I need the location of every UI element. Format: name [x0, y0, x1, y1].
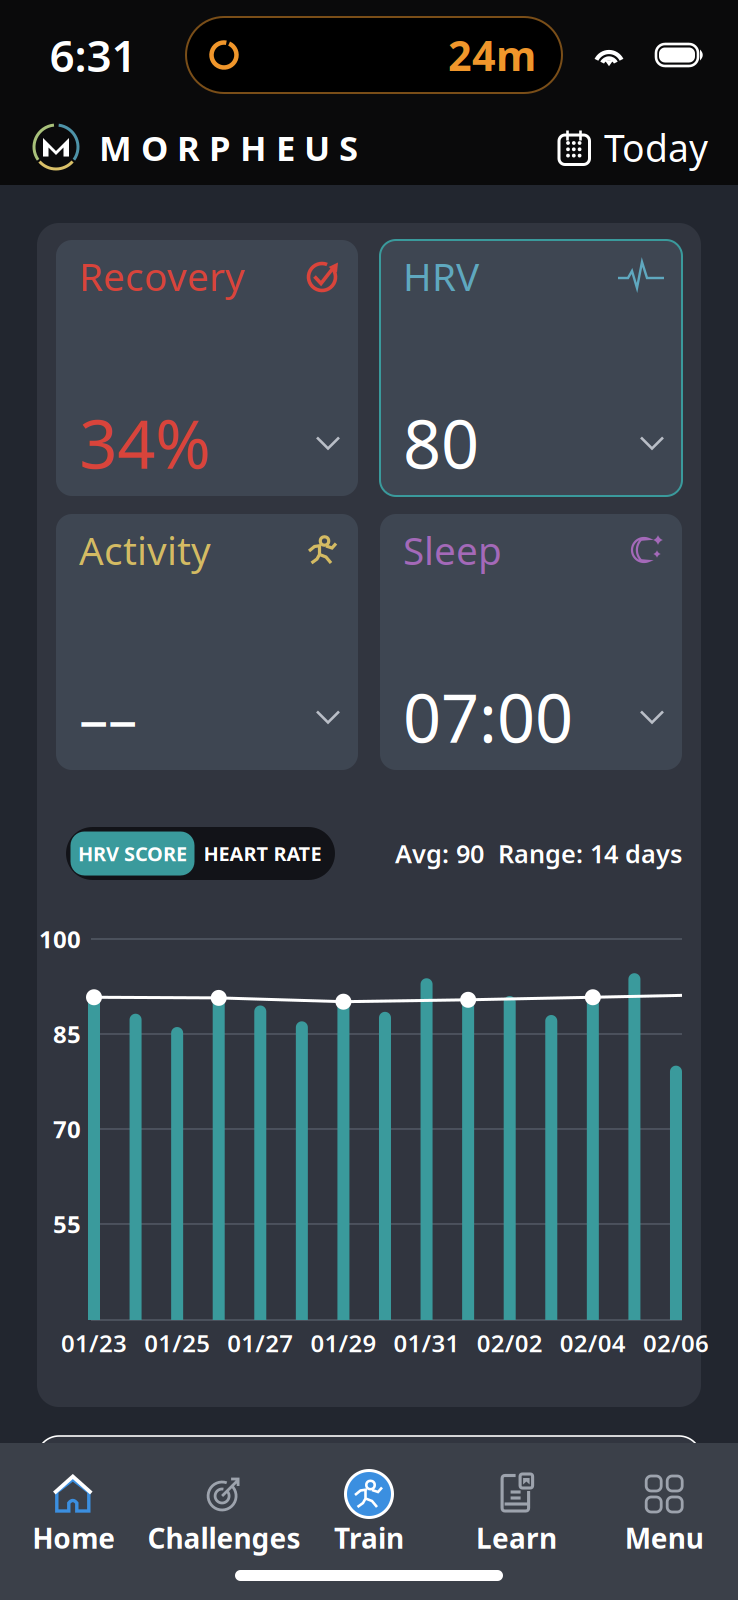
button[interactable]: Challenges [148, 1459, 295, 1563]
button[interactable]: Activity [56, 514, 358, 770]
button[interactable]: Home [0, 1459, 148, 1563]
staticText: M O R P H E U S [99, 124, 358, 170]
staticText: Activity [79, 524, 211, 576]
staticText: –– [79, 678, 137, 756]
button[interactable]: Recovery [56, 240, 358, 496]
staticText: Train [334, 1519, 404, 1557]
staticText: 70 [53, 1113, 81, 1145]
staticText: 01/29 [310, 1327, 376, 1359]
staticText: 01/25 [144, 1327, 210, 1359]
staticText: Recovery [79, 250, 245, 302]
button[interactable]: HRV [380, 240, 682, 496]
staticText: Learn [476, 1519, 557, 1557]
staticText: Today [604, 123, 708, 172]
staticText: 24m [448, 28, 536, 82]
staticText: 02/02 [477, 1327, 543, 1359]
staticText: 02/06 [643, 1327, 709, 1359]
staticText: Avg: 90 Range: 14 days [395, 837, 682, 870]
staticText: 100 [39, 923, 81, 955]
staticText: 6:31 [49, 26, 136, 84]
staticText: HRV SCORE [78, 840, 187, 867]
staticText: 55 [53, 1208, 81, 1240]
staticText: Menu [625, 1519, 704, 1557]
staticText: HRV [403, 250, 479, 302]
staticText: 01/31 [394, 1327, 460, 1359]
button[interactable]: Sleep [380, 514, 682, 770]
staticText: Sleep [403, 524, 502, 576]
staticText: Challenges [148, 1519, 301, 1557]
button[interactable]: Learn [443, 1459, 590, 1563]
staticText: 07:00 [403, 673, 573, 761]
staticText: 01/27 [227, 1327, 293, 1359]
staticText: 85 [53, 1018, 81, 1050]
staticText: 01/23 [61, 1327, 127, 1359]
staticText: HEART RATE [203, 840, 321, 867]
button[interactable]: Today [558, 123, 708, 172]
button[interactable]: Train [295, 1459, 443, 1563]
staticText: 02/04 [560, 1327, 626, 1359]
button[interactable]: HRV SCORE [70, 831, 194, 875]
staticText: 80 [403, 399, 479, 487]
staticText: 34% [79, 399, 210, 487]
button[interactable]: M O R P H E U S [32, 123, 358, 172]
button[interactable]: HEART RATE [194, 831, 330, 875]
button[interactable]: Menu [590, 1459, 738, 1563]
staticText: Home [32, 1519, 115, 1557]
